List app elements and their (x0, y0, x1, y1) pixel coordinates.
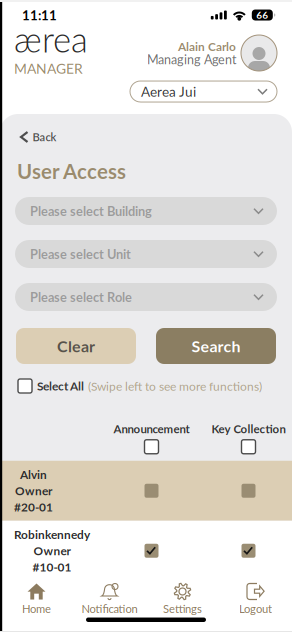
button[interactable]: Select All (18, 379, 32, 393)
button[interactable]: Settings (146, 583, 219, 615)
button[interactable]: Aerea Jui (130, 81, 277, 102)
staticText: Alvin (20, 467, 47, 482)
staticText: 11:11 (22, 7, 57, 23)
staticText: Robinkennedy (14, 527, 90, 542)
staticText: Please select Role (30, 289, 132, 305)
staticText: Managing Agent (147, 52, 236, 67)
button[interactable]: Robinkennedy (0, 521, 292, 581)
staticText: Announcement (113, 422, 189, 436)
staticText: User Access (17, 159, 126, 183)
button[interactable]: Logout (219, 583, 292, 615)
button[interactable]: Please select Unit (15, 240, 277, 268)
staticText: Please select Unit (30, 246, 131, 262)
button[interactable]: Alvin (0, 461, 292, 521)
button[interactable]: Please select Building (15, 197, 277, 225)
staticText: Home (22, 602, 51, 615)
staticText: Owner (15, 484, 52, 498)
staticText: Key Collection (211, 422, 285, 436)
staticText: Alain Carlo (178, 39, 236, 54)
button[interactable]: Back (0, 126, 292, 148)
button[interactable]: Key Collection (241, 440, 255, 454)
staticText: Clear (57, 336, 95, 356)
staticText: Logout (239, 602, 272, 615)
staticText: Notification (81, 602, 137, 615)
staticText: #20-01 (14, 500, 53, 514)
button[interactable]: Home (0, 583, 73, 615)
staticText: Back (32, 130, 56, 144)
staticText: ærea (14, 18, 88, 60)
staticText: MANAGER (14, 60, 83, 77)
staticText: Owner (33, 544, 70, 558)
button[interactable]: Clear (16, 328, 136, 364)
staticText: Settings (163, 602, 202, 615)
staticText: Please select Building (30, 203, 152, 219)
staticText: #10-01 (32, 560, 71, 574)
button[interactable]: Search (156, 328, 276, 364)
staticText: (Swipe left to see more functions) (88, 379, 262, 393)
button[interactable]: Please select Role (15, 283, 277, 311)
staticText: Select All (37, 379, 84, 393)
button[interactable]: Announcement (144, 440, 158, 454)
staticText: Search (191, 336, 240, 356)
staticText: Aerea Jui (141, 83, 196, 100)
button[interactable]: Notification (73, 583, 146, 615)
staticText: 66 (256, 9, 268, 21)
